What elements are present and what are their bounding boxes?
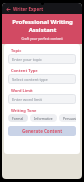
staticText: Topic <box>11 48 22 53</box>
staticText: Select content type <box>12 77 48 82</box>
button[interactable]: Generate Content <box>8 126 76 136</box>
staticText: Word Limit <box>11 88 33 93</box>
staticText: Writing Tone <box>11 108 37 113</box>
staticText: Writer Expert <box>13 6 44 12</box>
staticText: Formal <box>12 116 24 121</box>
button[interactable]: Persuasive <box>59 114 76 122</box>
staticText: Enter your topic <box>12 57 42 62</box>
button[interactable]: Formal <box>8 114 28 122</box>
button[interactable]: Back <box>4 5 12 13</box>
button[interactable]: Enter your topic <box>8 54 76 64</box>
staticText: Enter word limit <box>12 97 43 102</box>
staticText: Informative <box>34 116 53 121</box>
button[interactable]: Informative <box>30 114 57 122</box>
staticText: Persuasive <box>63 116 76 121</box>
button[interactable]: Enter word limit <box>8 94 76 104</box>
staticText: Craft your perfect content <box>21 36 63 41</box>
staticText: Professional Writing Assistant <box>12 18 73 34</box>
button[interactable]: Select content type <box>8 74 76 84</box>
staticText: Generate Content <box>22 128 63 134</box>
staticText: Content Type <box>11 68 38 73</box>
